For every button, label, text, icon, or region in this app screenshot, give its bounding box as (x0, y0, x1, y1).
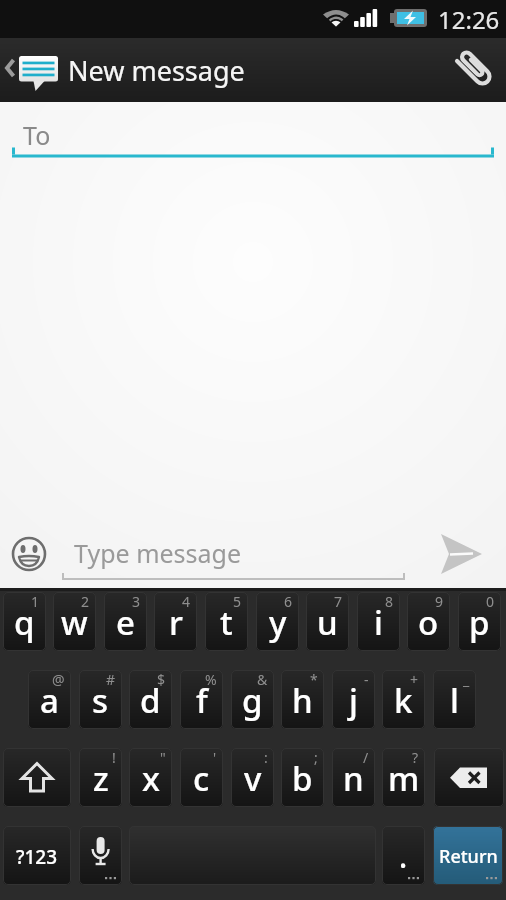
button[interactable] (434, 748, 504, 807)
button[interactable]: x (129, 748, 172, 807)
staticText: h (292, 678, 313, 723)
staticText: ?123 (16, 844, 58, 870)
button[interactable]: c (180, 748, 223, 807)
button[interactable]: To (0, 102, 506, 164)
button[interactable]: k (382, 670, 425, 729)
button[interactable]: p (458, 592, 501, 651)
staticText: % (205, 670, 217, 689)
staticText: m (388, 756, 420, 801)
staticText: p (469, 600, 490, 645)
staticText: e (116, 600, 135, 645)
staticText: 12:26 (438, 3, 500, 36)
staticText: n (343, 756, 364, 801)
staticText: q (14, 600, 35, 645)
button[interactable]: d (129, 670, 172, 729)
staticText: c (193, 756, 210, 801)
staticText: / (363, 748, 369, 767)
staticText: v (244, 756, 262, 801)
button[interactable]: f (180, 670, 223, 729)
staticText: * (310, 670, 318, 689)
staticText: s (92, 678, 109, 723)
staticText: + (410, 670, 419, 689)
staticText: w (61, 600, 88, 645)
button[interactable] (11, 533, 51, 573)
button[interactable]: r (154, 592, 197, 651)
staticText: 8 (385, 592, 394, 611)
button[interactable]: g (231, 670, 274, 729)
button[interactable]: h (281, 670, 324, 729)
button[interactable] (3, 748, 71, 807)
button[interactable]: j (332, 670, 375, 729)
button[interactable]: n (332, 748, 375, 807)
staticText: i (374, 600, 383, 645)
button[interactable]: y (256, 592, 299, 651)
staticText: # (106, 670, 116, 689)
button[interactable]: l (433, 670, 476, 729)
button[interactable]: s (79, 670, 122, 729)
staticText: New message (68, 52, 245, 89)
button[interactable]: b (281, 748, 324, 807)
staticText: 0 (486, 592, 495, 611)
staticText: ? (412, 748, 419, 767)
staticText: " (160, 748, 166, 767)
staticText: & (257, 670, 268, 689)
button[interactable]: Return (433, 826, 503, 885)
button[interactable]: v (231, 748, 274, 807)
staticText: r (169, 600, 183, 645)
staticText: Type message (74, 536, 242, 570)
button[interactable] (79, 826, 122, 885)
staticText: 9 (435, 592, 444, 611)
staticText: l (450, 678, 459, 723)
staticText: 4 (182, 592, 191, 611)
button[interactable]: z (79, 748, 122, 807)
staticText: To (23, 118, 51, 152)
button[interactable]: i (357, 592, 400, 651)
staticText: k (394, 678, 413, 723)
button[interactable]: Type message (62, 524, 407, 582)
staticText: o (418, 600, 439, 645)
staticText: . (399, 836, 408, 877)
button[interactable] (442, 38, 506, 102)
staticText: : (264, 748, 268, 767)
staticText: z (93, 756, 109, 801)
staticText: t (220, 600, 233, 645)
staticText: g (242, 678, 263, 723)
staticText: ; (314, 748, 318, 767)
staticText: a (40, 678, 59, 723)
staticText: d (140, 678, 161, 723)
staticText: x (142, 756, 160, 801)
staticText: y (269, 600, 287, 645)
staticText: j (349, 678, 358, 723)
staticText: @ (52, 670, 65, 689)
button[interactable]: o (407, 592, 450, 651)
button[interactable] (129, 826, 376, 885)
staticText: ! (112, 748, 116, 767)
button[interactable]: New message (0, 38, 245, 102)
button[interactable]: t (205, 592, 248, 651)
staticText: 7 (334, 592, 343, 611)
staticText: 1 (31, 592, 40, 611)
button[interactable]: e (104, 592, 147, 651)
staticText: 2 (81, 592, 90, 611)
staticText: 5 (233, 592, 242, 611)
staticText: _ (463, 670, 470, 689)
staticText: ' (213, 748, 217, 767)
staticText: 3 (132, 592, 141, 611)
button[interactable] (440, 527, 492, 579)
staticText: 6 (284, 592, 293, 611)
staticText: b (292, 756, 313, 801)
button[interactable]: ?123 (3, 826, 71, 885)
staticText: $ (157, 670, 166, 689)
staticText: Return (439, 844, 498, 869)
button[interactable]: a (28, 670, 71, 729)
button[interactable]: q (3, 592, 46, 651)
staticText: - (364, 670, 369, 689)
button[interactable]: u (306, 592, 349, 651)
button[interactable]: w (53, 592, 96, 651)
button[interactable]: . (382, 826, 425, 885)
staticText: f (196, 678, 208, 723)
button[interactable]: m (382, 748, 425, 807)
staticText: u (317, 600, 338, 645)
